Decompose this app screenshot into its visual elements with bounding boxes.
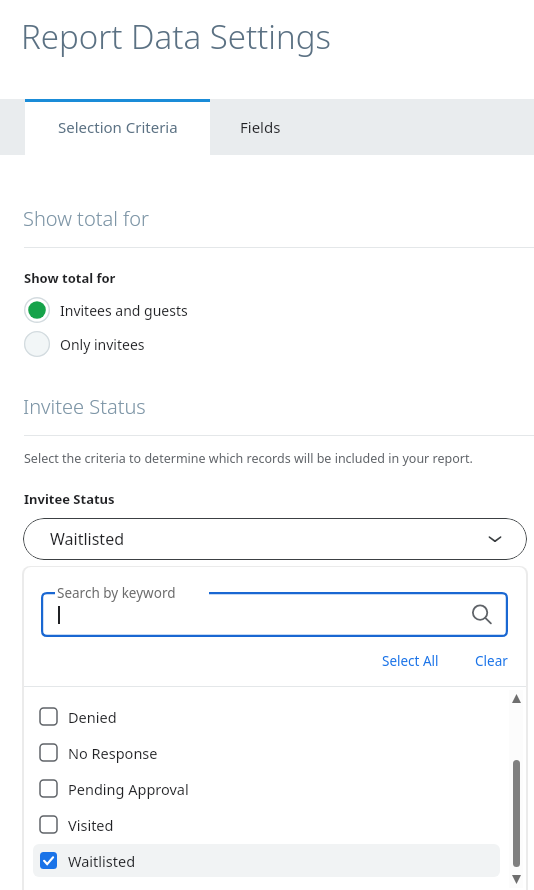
- button[interactable]: Waitlisted: [23, 518, 527, 560]
- button[interactable]: Selection Criteria: [25, 99, 210, 155]
- button[interactable]: Invitees and guests: [20, 294, 192, 326]
- staticText: No Response: [68, 743, 158, 763]
- staticText: Visited: [68, 815, 114, 835]
- button[interactable]: Visited: [33, 808, 500, 841]
- button[interactable]: Denied: [33, 700, 500, 733]
- staticText: Waitlisted: [50, 528, 125, 550]
- staticText: Select the criteria to determine which r…: [24, 450, 473, 467]
- other: Scroll list: [509, 690, 523, 888]
- staticText: Report Data Settings: [21, 14, 331, 59]
- staticText: Invitee Status: [23, 393, 146, 420]
- staticText: Show total for: [23, 205, 149, 232]
- staticText: Select All: [382, 652, 439, 670]
- staticText: Show total for: [24, 269, 116, 287]
- staticText: Denied: [68, 707, 117, 727]
- staticText: Invitee Status: [24, 490, 115, 508]
- button[interactable]: Waitlisted: [33, 844, 500, 877]
- button[interactable]: No Response: [33, 736, 500, 769]
- button[interactable]: Search by keyword: [41, 592, 508, 637]
- staticText: Pending Approval: [68, 779, 189, 799]
- button[interactable]: Clear: [469, 648, 514, 674]
- staticText: Fields: [240, 117, 281, 137]
- staticText: Invitees and guests: [60, 301, 188, 320]
- staticText: Selection Criteria: [58, 117, 178, 137]
- button[interactable]: Pending Approval: [33, 772, 500, 805]
- button[interactable]: Fields: [210, 99, 310, 155]
- staticText: Search by keyword: [57, 584, 176, 602]
- staticText: Only invitees: [60, 335, 145, 354]
- staticText: Waitlisted: [68, 851, 136, 871]
- button[interactable]: Only invitees: [20, 328, 149, 360]
- other: Search: [470, 603, 494, 627]
- staticText: Clear: [475, 652, 508, 670]
- button[interactable]: Select All: [376, 648, 445, 674]
